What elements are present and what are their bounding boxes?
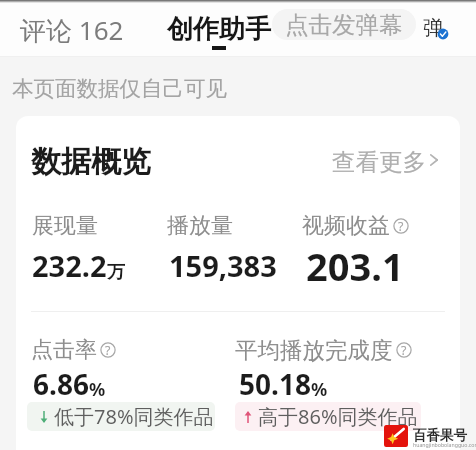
staticText: huangjinbobolangguo.com [413,441,476,448]
staticText: 展现量 [32,212,98,240]
staticText: 数据概览 [31,143,151,181]
staticText: 本页面数据仅自己可见 [12,75,227,102]
staticText: ? [401,342,407,358]
staticText: 创作助手 [167,13,271,46]
staticText: 查看更多 [332,147,426,177]
staticText: 203.1 [306,240,404,292]
staticText: 低于78%同类作品 [54,403,214,430]
staticText: 6.86 [33,365,89,403]
staticText: 平均播放完成度 [235,336,393,364]
button[interactable]: 查看更多 [332,147,438,177]
staticText: 百香果号 [413,427,467,444]
staticText: 评论 162 [20,12,124,48]
staticText: 232.2 [32,246,107,285]
button[interactable]: 点击发弹幕 [272,9,416,40]
button[interactable]: 创作助手 [167,13,271,46]
staticText: ? [398,218,404,234]
staticText: 点击发弹幕 [285,10,403,40]
button[interactable]: 低于78%同类作品 [27,402,215,431]
button[interactable]: 评论 162 [20,12,124,48]
staticText: 高于86%同类作品 [258,403,418,430]
staticText: 万 [107,261,125,284]
button[interactable]: 弹幕设置 [416,12,455,44]
button[interactable]: 高于86%同类作品 [235,402,421,431]
staticText: 点击率 [31,336,97,364]
staticText: ? [105,342,111,358]
staticText: 视频收益 [302,212,390,240]
staticText: % [89,377,106,402]
staticText: 播放量 [167,212,233,240]
staticText: % [311,377,328,402]
staticText: 50.18 [239,365,311,403]
staticText: 弹 [423,15,444,41]
staticText: 159,383 [169,246,277,285]
